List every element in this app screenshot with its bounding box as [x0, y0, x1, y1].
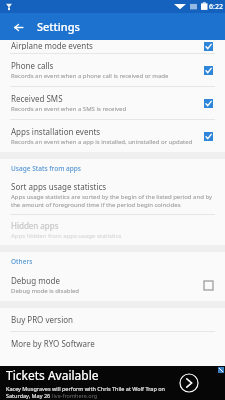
button[interactable]: Toggle: [197, 40, 219, 53]
button[interactable]: Received SMS: [0, 87, 225, 119]
staticText: live-fromhere.org: [52, 392, 98, 399]
staticText: Sort apps usage statistics: [11, 181, 107, 192]
staticText: Phone calls: [11, 60, 54, 71]
staticText: Records an event when a SMS is received: [11, 105, 127, 113]
staticText: Received SMS: [11, 93, 63, 104]
staticText: Airplane mode events: [11, 40, 93, 50]
staticText: Debug mode: [11, 275, 60, 286]
button[interactable]: Debug mode: [0, 269, 225, 301]
staticText: Records an event when a phone call is re…: [11, 72, 169, 80]
staticText: Saturday, May 26: [6, 392, 52, 399]
button[interactable]: Phone calls: [0, 54, 225, 86]
staticText: Records an event when a app is installed…: [11, 138, 193, 146]
button[interactable]: Buy PRO version: [0, 308, 225, 331]
button[interactable]: Toggle: [197, 59, 219, 81]
staticText: Debug mode is disabled: [11, 287, 80, 295]
button[interactable]: Airplane mode events: [0, 40, 225, 53]
button[interactable]: Toggle: [197, 125, 219, 147]
staticText: Others: [11, 257, 33, 266]
staticText: Settings: [37, 19, 80, 34]
staticText: Apps hidden from apps usage statistics: [11, 232, 122, 240]
button[interactable]: Apps installation events: [0, 120, 225, 152]
button[interactable]: More by RYO Software: [0, 332, 225, 355]
button[interactable]: Toggle: [197, 92, 219, 114]
staticText: Apps usage statistics are sorted by the …: [11, 193, 219, 209]
button[interactable]: Tickets Available: [0, 366, 225, 400]
staticText: Apps installation events: [11, 126, 101, 137]
staticText: Hidden apps: [11, 220, 59, 231]
staticText: Kacey Musgraves will perform with Chris …: [6, 385, 165, 392]
staticText: 6:22: [209, 2, 223, 12]
button[interactable]: Toggle: [197, 274, 219, 296]
button[interactable]: Sort apps usage statistics: [0, 176, 225, 214]
other: Open ad: [179, 373, 199, 393]
button[interactable]: Back: [8, 17, 28, 37]
staticText: Usage Stats from apps: [11, 164, 81, 173]
staticText: Tickets Available: [6, 367, 99, 383]
staticText: More by RYO Software: [11, 338, 95, 349]
staticText: Buy PRO version: [11, 314, 74, 325]
button[interactable]: Hidden apps: [0, 215, 225, 245]
